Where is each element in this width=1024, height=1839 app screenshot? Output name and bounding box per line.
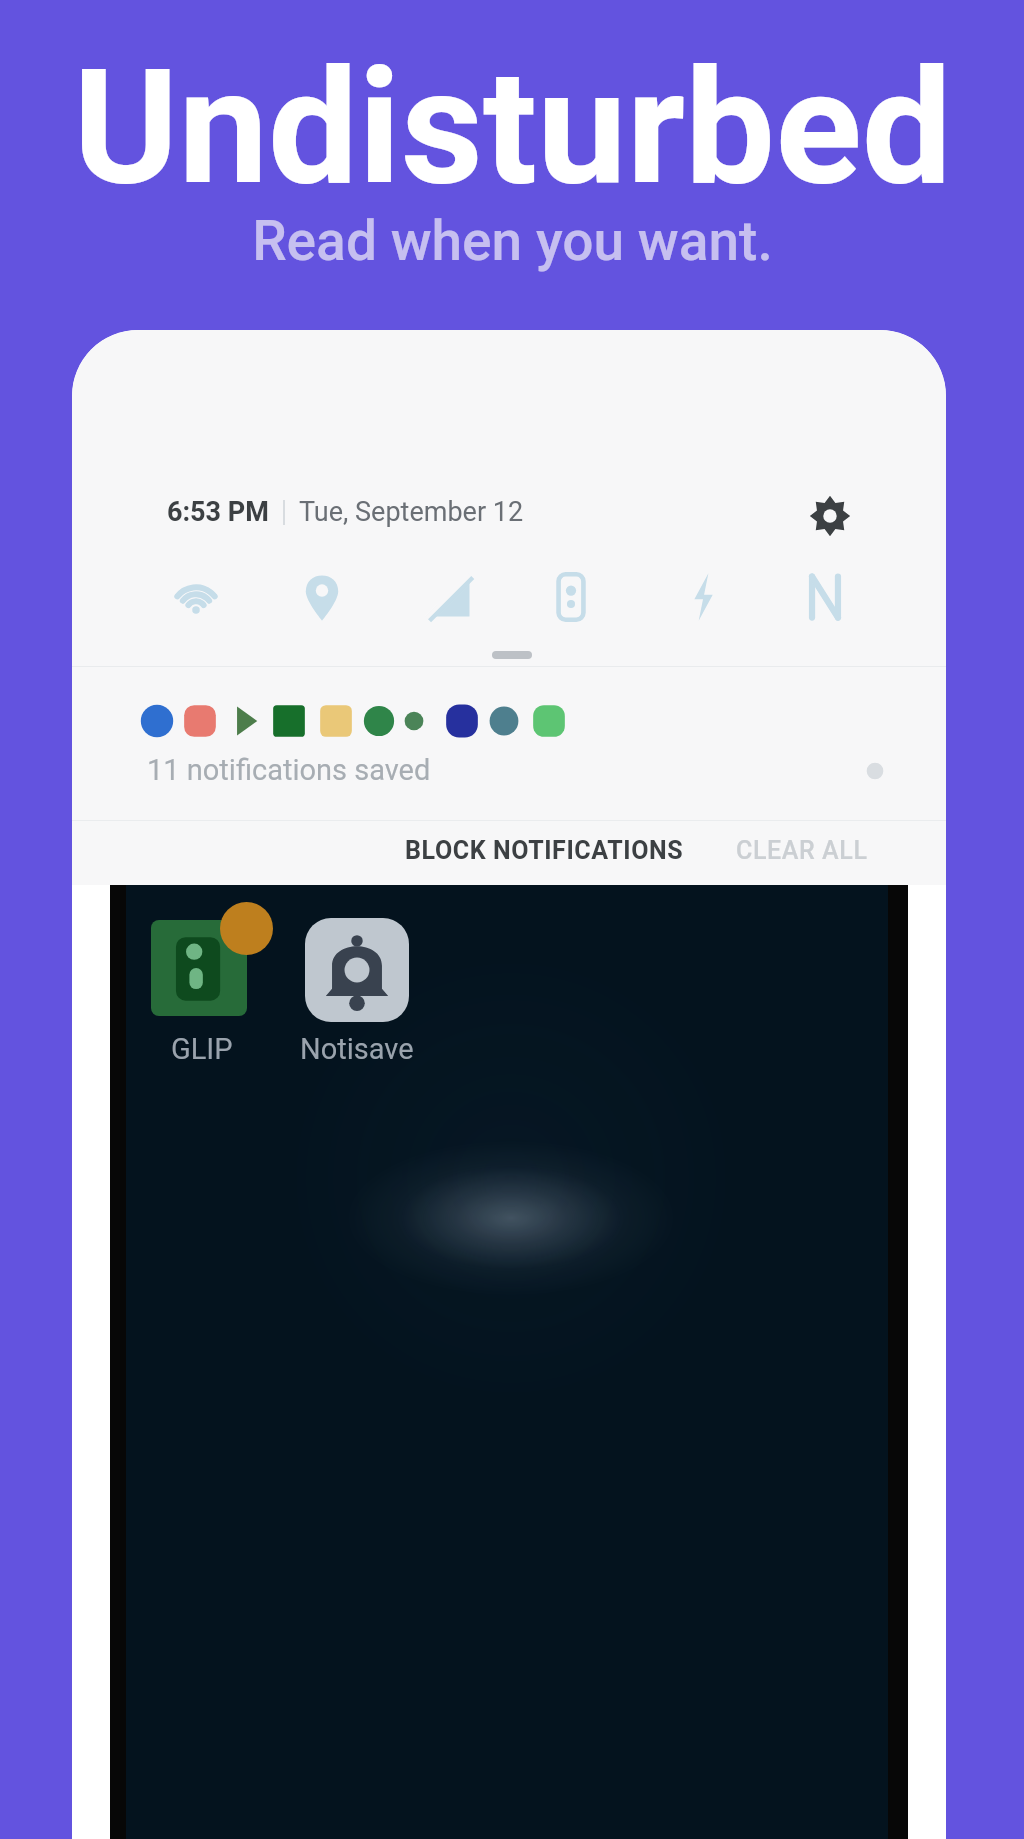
- staticText: 11 notifications saved: [147, 753, 431, 787]
- button[interactable]: NFC: [793, 565, 857, 629]
- button[interactable]: Settings: [806, 492, 854, 540]
- button[interactable]: Location: [290, 565, 354, 629]
- button[interactable]: CLEAR ALL: [728, 828, 876, 873]
- button[interactable]: GLIP app: [151, 920, 247, 1016]
- staticText: BLOCK NOTIFICATIONS: [405, 836, 684, 865]
- staticText: CLEAR ALL: [736, 836, 868, 865]
- button[interactable]: BLOCK NOTIFICATIONS: [397, 828, 692, 873]
- button[interactable]: Flashlight: [671, 565, 735, 629]
- staticText: GLIP: [171, 1032, 233, 1066]
- button[interactable]: Notisave app: [305, 918, 409, 1022]
- staticText: Read when you want.: [252, 209, 773, 273]
- staticText: Tue, September 12: [299, 496, 524, 528]
- button[interactable]: Wi-Fi: [164, 565, 228, 629]
- staticText: Notisave: [300, 1032, 414, 1066]
- staticText: Undisturbed: [73, 34, 952, 222]
- staticText: 6:53 PM: [167, 496, 269, 528]
- button[interactable]: Auto rotate: [539, 565, 603, 629]
- button[interactable]: Mobile data: [417, 565, 481, 629]
